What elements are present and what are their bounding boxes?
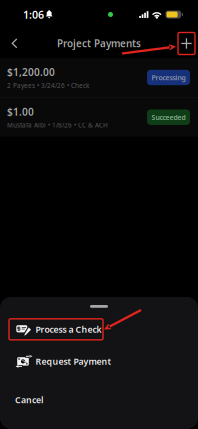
- staticText: 1:06: [23, 7, 44, 22]
- button[interactable]: Request Payment: [0, 351, 198, 372]
- staticText: 2 Payees • 3/24/26 • Check: [7, 81, 89, 90]
- button[interactable]: Process a Check: [0, 319, 198, 340]
- staticText: $1,200.00: [7, 65, 55, 79]
- button[interactable]: Cancel: [0, 388, 55, 412]
- staticText: Process a Check: [35, 323, 101, 335]
- staticText: Project Payments: [57, 37, 141, 50]
- staticText: Cancel: [15, 394, 43, 406]
- button[interactable]: Add payment: [178, 32, 198, 54]
- staticText: $1.00: [7, 105, 34, 119]
- button[interactable]: Back: [0, 31, 30, 55]
- staticText: Request Payment: [35, 355, 111, 367]
- staticText: Processing: [151, 73, 185, 82]
- button[interactable]: $1,200.00: [0, 58, 198, 97]
- staticText: Succeeded: [151, 112, 185, 122]
- staticText: Mustafa Albi • 1/8/26 • CC & ACH: [7, 121, 108, 129]
- button[interactable]: $1.00: [0, 98, 198, 137]
